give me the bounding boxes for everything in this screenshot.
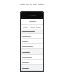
button[interactable] <box>21 34 43 38</box>
button[interactable] <box>21 39 43 43</box>
button[interactable]: Open <box>21 44 43 48</box>
button[interactable] <box>21 55 43 59</box>
button[interactable] <box>21 60 43 64</box>
